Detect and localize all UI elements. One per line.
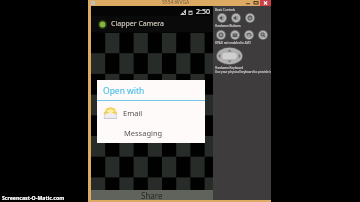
button[interactable]: Volume down [217,13,227,23]
button[interactable]: Close [260,0,271,6]
staticText: 5554:WVGA [162,0,190,5]
button[interactable]: Power [245,13,255,23]
button[interactable]: Search [258,30,268,40]
button[interactable]: Volume up [231,13,241,23]
button[interactable]: Email [97,101,205,123]
button[interactable]: Minimize [244,0,252,6]
button[interactable]: Share [91,190,213,200]
staticText: Screencast-O-Matic.com [2,194,65,201]
staticText: 2:50 [196,7,210,17]
staticText: DPAD not enabled in AVD [215,41,251,45]
button[interactable]: Maximize [252,0,260,6]
button[interactable]: Messaging [97,123,205,143]
button[interactable]: Menu [230,30,240,40]
staticText: Clapper Camera [111,19,164,29]
staticText: Share [141,190,163,200]
staticText: Messaging [124,128,163,138]
button[interactable]: Back [244,30,254,40]
staticText: Use your physical keyboard to provide in… [215,70,271,74]
staticText: Open with [103,85,145,97]
button[interactable]: Home [216,30,226,40]
button[interactable]: D-pad [216,47,243,65]
staticText: Hardware Buttons [215,24,241,28]
staticText: Basic Controls [215,8,235,12]
staticText: Hardware Keyboard [215,66,271,70]
staticText: Email [123,108,143,118]
